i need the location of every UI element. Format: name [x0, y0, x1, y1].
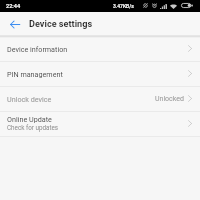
staticText: Device information	[7, 45, 68, 53]
staticText: 22:44	[6, 3, 21, 10]
button[interactable]: Back	[4, 12, 25, 37]
staticText: Online Update	[7, 115, 52, 123]
staticText: Device settings	[29, 19, 93, 30]
button[interactable]: Online Update	[0, 112, 200, 137]
button[interactable]: Device information	[0, 37, 200, 62]
staticText: PIN management	[7, 70, 63, 78]
staticText: 3.47KB/s	[113, 3, 134, 9]
staticText: Unlocked	[155, 95, 184, 103]
staticText: Unlock device	[7, 95, 52, 103]
button[interactable]: PIN management	[0, 62, 200, 87]
button[interactable]: Unlock device	[0, 87, 200, 112]
staticText: Check for updates	[7, 124, 59, 131]
